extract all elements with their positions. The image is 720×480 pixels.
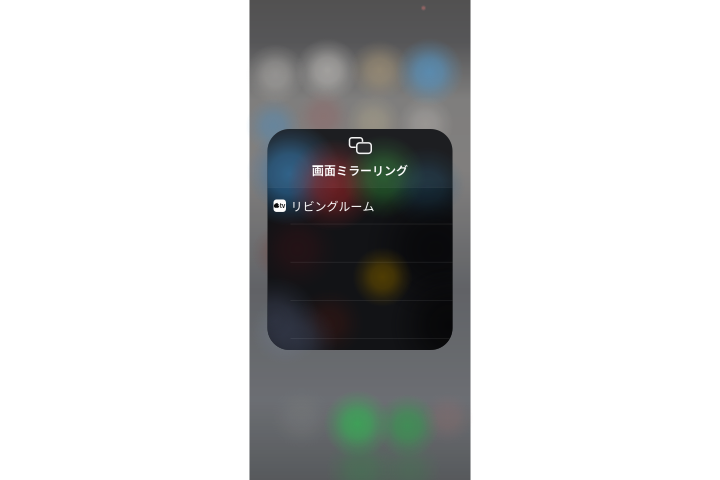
button[interactable]: Empty device slot <box>267 263 452 300</box>
staticText: 画面ミラーリング <box>312 161 408 179</box>
button[interactable]: tv <box>267 188 452 224</box>
button[interactable]: Empty device slot <box>267 301 452 338</box>
button[interactable]: Empty device slot <box>267 224 452 262</box>
staticText: リビングルーム <box>290 197 374 214</box>
staticText: tv <box>280 202 286 209</box>
